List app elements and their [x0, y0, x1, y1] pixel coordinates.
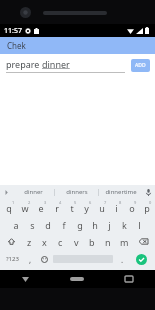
staticText: t	[70, 202, 74, 214]
staticText: 2	[28, 200, 31, 205]
button[interactable]: dinnertime	[99, 185, 142, 199]
button[interactable]: 9	[124, 199, 139, 216]
staticText: h	[92, 219, 98, 231]
staticText: 8	[119, 200, 122, 205]
staticText: f	[62, 219, 66, 231]
button[interactable]: Backspace	[132, 233, 154, 250]
staticText: dinners	[66, 188, 88, 196]
button[interactable]: ADD	[131, 59, 150, 72]
staticText: q	[6, 202, 12, 214]
staticText: 1	[12, 200, 15, 205]
button[interactable]: v	[68, 233, 84, 250]
button[interactable]: Voice input	[142, 185, 155, 199]
staticText: v	[74, 236, 79, 248]
staticText: 3	[44, 200, 47, 205]
staticText: z	[27, 236, 32, 248]
button[interactable]: .	[115, 250, 129, 268]
button[interactable]: g	[72, 216, 87, 233]
button[interactable]: z	[22, 233, 37, 250]
staticText: y	[84, 202, 89, 214]
button[interactable]: prepare	[6, 58, 125, 73]
staticText: 6	[89, 200, 92, 205]
button[interactable]: ,	[23, 250, 37, 268]
staticText: i	[115, 202, 118, 214]
staticText: 4	[59, 200, 62, 205]
button[interactable]: d	[40, 216, 56, 233]
staticText: s	[30, 219, 35, 231]
staticText: b	[89, 236, 95, 248]
button[interactable]: 1	[1, 199, 17, 216]
staticText: l	[138, 219, 141, 231]
button[interactable]: Done	[129, 250, 154, 268]
staticText: .	[121, 254, 124, 265]
button[interactable]: 7	[94, 199, 109, 216]
staticText: 9	[134, 200, 137, 205]
button[interactable]: f	[56, 216, 72, 233]
button[interactable]: Recents	[103, 270, 155, 288]
staticText: g	[77, 219, 83, 231]
button[interactable]: c	[52, 233, 68, 250]
button[interactable]: x	[37, 233, 52, 250]
button[interactable]: n	[100, 233, 116, 250]
button[interactable]: 6	[79, 199, 94, 216]
button[interactable]: Home	[51, 270, 103, 288]
staticText: x	[42, 236, 47, 248]
staticText: Chek	[7, 40, 26, 51]
button[interactable]: Chek	[0, 37, 155, 54]
staticText: dinner	[42, 58, 70, 70]
staticText: w	[21, 202, 29, 214]
staticText: k	[122, 219, 127, 231]
button[interactable]: k	[117, 216, 132, 233]
staticText: ?123	[6, 255, 19, 263]
button[interactable]: Shift	[1, 233, 22, 250]
button[interactable]: More suggestions	[0, 185, 12, 199]
staticText: a	[13, 219, 19, 231]
staticText: ,	[29, 254, 32, 265]
button[interactable]: m	[116, 233, 132, 250]
button[interactable]: 8	[109, 199, 124, 216]
staticText: p	[144, 202, 150, 214]
staticText: dinner	[24, 188, 43, 196]
staticText: 5	[74, 200, 77, 205]
staticText: 0	[149, 200, 152, 205]
button[interactable]: 0	[139, 199, 154, 216]
staticText: ADD	[135, 62, 146, 69]
staticText: m	[120, 236, 129, 248]
button[interactable]: 5	[64, 199, 79, 216]
button[interactable]: j	[102, 216, 117, 233]
button[interactable]: h	[87, 216, 102, 233]
staticText: dinnertime	[105, 188, 137, 196]
button[interactable]: l	[132, 216, 147, 233]
button[interactable]: dinner	[12, 185, 54, 199]
button[interactable]: dinners	[55, 185, 98, 199]
button[interactable]: s	[24, 216, 40, 233]
staticText: 11:57	[4, 26, 22, 36]
staticText: n	[105, 236, 111, 248]
button[interactable]: 3	[33, 199, 49, 216]
staticText: 7	[104, 200, 107, 205]
staticText: d	[45, 219, 51, 231]
button[interactable]: Emoji	[37, 250, 51, 268]
staticText: o	[129, 202, 135, 214]
staticText: e	[38, 202, 44, 214]
staticText: j	[108, 219, 111, 231]
button[interactable]: ?123	[1, 250, 23, 268]
button[interactable]: Back	[0, 270, 51, 288]
button[interactable]: 4	[49, 199, 64, 216]
button[interactable]: b	[84, 233, 100, 250]
staticText: c	[58, 236, 63, 248]
staticText: prepare	[6, 58, 42, 70]
staticText: r	[55, 202, 59, 214]
button[interactable]: a	[8, 216, 24, 233]
staticText: u	[99, 202, 105, 214]
button[interactable]: 2	[17, 199, 33, 216]
